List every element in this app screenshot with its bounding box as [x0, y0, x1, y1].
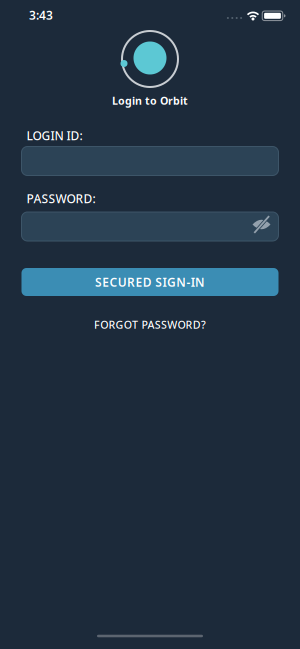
staticText: Login to Orbit [112, 93, 188, 108]
button[interactable] [21, 146, 278, 175]
staticText: 3:43 [29, 7, 53, 23]
staticText: SECURED SIGN-IN [95, 274, 205, 290]
staticText: PASSWORD: [26, 190, 95, 206]
button[interactable] [250, 213, 272, 235]
button[interactable] [21, 212, 278, 241]
staticText: LOGIN ID: [26, 127, 82, 143]
staticText: FORGOT PASSWORD? [94, 317, 206, 332]
button[interactable]: FORGOT PASSWORD? [94, 317, 206, 332]
button[interactable]: SECURED SIGN-IN [21, 268, 278, 296]
